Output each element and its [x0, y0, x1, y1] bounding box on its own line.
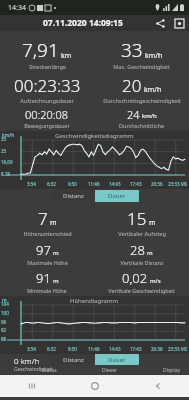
staticText: 11:46 [88, 346, 100, 352]
staticText: Dauer [108, 192, 126, 200]
button[interactable]: Distanz [51, 354, 95, 365]
button[interactable]: Distanz [51, 190, 95, 202]
staticText: 33 [121, 37, 143, 63]
staticText: 35 [1, 136, 7, 142]
staticText: 6:32 [47, 181, 56, 187]
staticText: Vertikale Geschwindigkeit [108, 287, 175, 294]
staticText: 8,28 [1, 171, 10, 177]
staticText: Durchschnittsgeschwindigkeit [103, 97, 181, 104]
button[interactable]: More options [169, 15, 189, 31]
staticText: m [50, 218, 57, 228]
staticText: Vertikale Distanz [120, 259, 164, 266]
staticText: Minimale Höhe [27, 287, 67, 294]
staticText: Maximale Höhe [27, 259, 68, 266]
staticText: 7,91 [22, 37, 59, 63]
staticText: m/s [150, 277, 161, 285]
staticText: 92 [1, 327, 7, 333]
staticText: Distanz [63, 192, 84, 200]
staticText: 23:33 MS [168, 346, 188, 352]
staticText: m [147, 249, 153, 257]
staticText: km/h [144, 85, 162, 95]
staticText: 24 [127, 107, 140, 122]
staticText: Durchschnittliche Bewegungsgeschwind… [94, 122, 189, 129]
staticText: m [2, 297, 7, 304]
staticText: Distanz [63, 356, 84, 364]
staticText: 14:43 [109, 181, 121, 187]
staticText: 00:23:33 [14, 74, 81, 97]
staticText: 3:54 [27, 346, 36, 352]
staticText: m [53, 277, 59, 285]
staticText: m [149, 218, 156, 228]
staticText: Geschwindigkeitsdiagramm [55, 132, 134, 140]
staticText: Höhenunterschied [23, 230, 72, 237]
staticText: Status [42, 367, 57, 374]
staticText: 28 [130, 241, 145, 259]
staticText: 0,02 [122, 269, 148, 287]
staticText: m [53, 249, 59, 257]
staticText: 0 km/h [14, 355, 40, 366]
staticText: Vertikaler Aufstieg [118, 230, 166, 237]
button[interactable]: Share [151, 15, 169, 31]
staticText: 9:50 [68, 346, 77, 352]
staticText: Dieser [102, 367, 118, 374]
staticText: 88 [1, 336, 7, 342]
staticText: 20:36 [151, 346, 163, 352]
staticText: Aufzeichnungsdauer [20, 97, 74, 104]
staticText: 7 [38, 207, 48, 230]
staticText: 20:36 [151, 181, 163, 187]
staticText: 6:32 [47, 346, 56, 352]
staticText: 16,69 [1, 159, 13, 165]
staticText: Geschwindigkeit [14, 366, 53, 373]
staticText: 91 [36, 269, 51, 287]
staticText: Dauer [108, 356, 126, 364]
staticText: Max. Geschwindigkeit [113, 63, 170, 70]
staticText: Höhendiagramm [70, 297, 119, 305]
staticText: 14:34 [8, 3, 26, 13]
staticText: km [61, 51, 72, 61]
staticText: 3:54 [27, 181, 36, 187]
staticText: 96 [1, 319, 7, 325]
staticText: 97 [36, 241, 51, 259]
staticText: 25 [1, 148, 7, 154]
button[interactable]: Back [126, 375, 189, 397]
button[interactable]: Home [63, 375, 126, 397]
staticText: 9:50 [68, 181, 77, 187]
staticText: 07.11.2020 14:09:15 [43, 17, 123, 29]
staticText: 00:20:08 [25, 107, 69, 122]
staticText: km/h [2, 132, 15, 139]
staticText: 23:33 MS [168, 181, 188, 187]
staticText: km/h [145, 51, 163, 61]
staticText: 11:46 [88, 181, 100, 187]
button[interactable]: Dauer [95, 354, 139, 365]
staticText: km/h [142, 112, 157, 120]
staticText: 104 [1, 301, 9, 307]
staticText: Bewegungsdauer [24, 122, 70, 129]
button[interactable]: Dauer [95, 190, 139, 202]
staticText: 14:43 [109, 346, 121, 352]
staticText: 20 [122, 74, 142, 97]
staticText: 100 [1, 310, 9, 316]
staticText: Streckenlänge [29, 63, 66, 70]
staticText: Display [163, 367, 181, 374]
staticText: 17:43 [130, 181, 142, 187]
staticText: 17:43 [130, 346, 142, 352]
button[interactable]: Recent apps [0, 375, 63, 397]
staticText: 15 [127, 207, 147, 230]
